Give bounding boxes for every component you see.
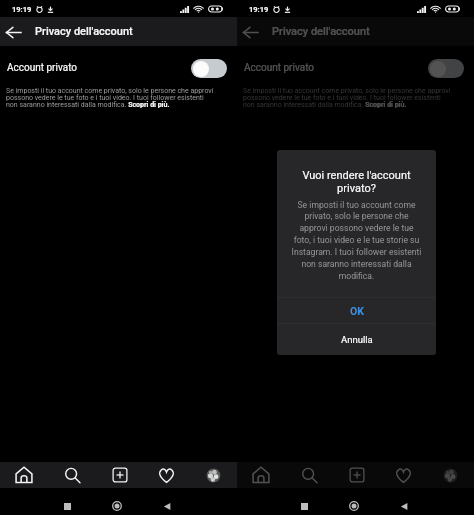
staticText: Se imposti il tuo account come privato, … xyxy=(291,200,422,281)
button[interactable]: Home xyxy=(105,494,129,515)
staticText: Account privato xyxy=(7,62,191,74)
button[interactable]: Account privato xyxy=(237,46,474,90)
staticText: Se imposti il tuo account come privato, … xyxy=(6,87,214,94)
button[interactable]: OK xyxy=(277,298,436,323)
staticText: OK xyxy=(350,305,364,317)
button[interactable]: Profilo xyxy=(427,462,474,488)
button[interactable]: Home xyxy=(237,462,285,488)
button[interactable]: Account privato xyxy=(428,59,464,78)
button[interactable]: Mi piace xyxy=(380,462,427,488)
button[interactable]: Recenti xyxy=(292,494,316,515)
button[interactable]: Aggiungi xyxy=(96,462,143,488)
button[interactable]: Cerca xyxy=(285,462,333,488)
button[interactable]: Indietro xyxy=(392,494,416,515)
button[interactable]: Mi piace xyxy=(143,462,190,488)
button[interactable]: Home xyxy=(342,494,366,515)
button[interactable]: Cerca xyxy=(48,462,96,488)
staticText: non saranno interessati dalla modifica. … xyxy=(6,101,170,108)
staticText: Vuoi rendere l'account privato? xyxy=(289,169,424,194)
button[interactable]: Account privato xyxy=(191,59,227,78)
button[interactable]: Indietro xyxy=(237,19,263,45)
button[interactable]: Home xyxy=(0,462,48,488)
staticText: Privacy dell'account xyxy=(272,25,370,38)
button[interactable]: Indietro xyxy=(0,19,26,45)
staticText: Account privato xyxy=(244,62,428,74)
button[interactable]: Indietro xyxy=(155,494,179,515)
button[interactable]: Annulla xyxy=(277,324,436,355)
staticText: 19:19 xyxy=(12,5,32,14)
button[interactable]: Aggiungi xyxy=(333,462,380,488)
staticText: 19:19 xyxy=(249,5,269,14)
staticText: Se imposti il tuo account come privato, … xyxy=(243,87,451,94)
staticText: Privacy dell'account xyxy=(35,25,133,38)
staticText: Annulla xyxy=(341,334,373,345)
button[interactable]: Profilo xyxy=(190,462,237,488)
staticText: non saranno interessati dalla modifica. … xyxy=(243,101,407,108)
button[interactable]: Account privato xyxy=(0,46,237,90)
button[interactable]: Recenti xyxy=(55,494,79,515)
staticText: possono vedere le tue foto e i tuoi vide… xyxy=(243,94,441,101)
staticText: possono vedere le tue foto e i tuoi vide… xyxy=(6,94,204,101)
